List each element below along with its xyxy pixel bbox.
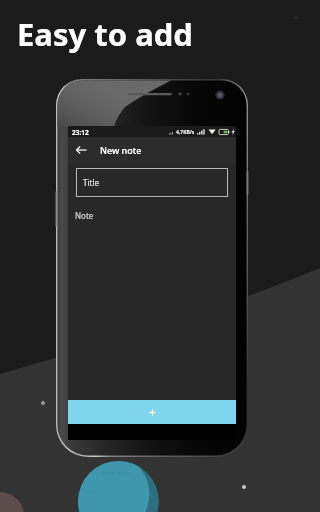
staticText: Note: [75, 210, 94, 221]
staticText: 23:12: [72, 128, 89, 137]
staticText: Title: [83, 177, 99, 188]
staticText: New note: [100, 144, 142, 156]
button[interactable]: Back: [68, 137, 94, 163]
button[interactable]: Title: [76, 168, 228, 197]
button[interactable]: Add note: [68, 400, 236, 424]
staticText: Easy to add: [17, 13, 193, 55]
staticText: 4,7KB/s: [176, 129, 195, 136]
